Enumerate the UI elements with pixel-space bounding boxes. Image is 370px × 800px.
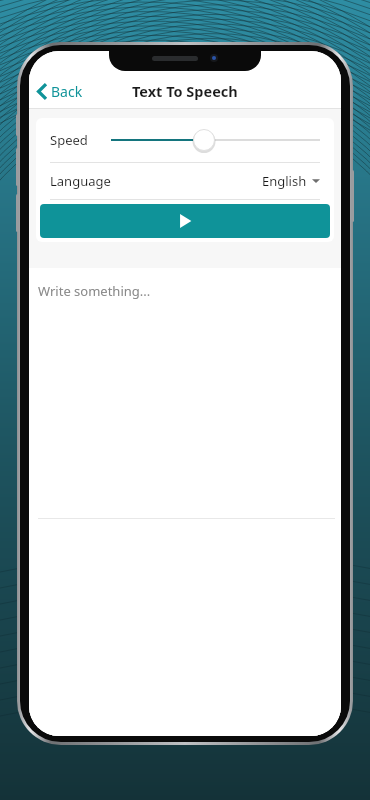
button[interactable]: Play — [40, 204, 330, 238]
staticText: Back — [51, 82, 83, 101]
staticText: Text To Speech — [132, 81, 238, 101]
staticText: Write something... — [38, 282, 151, 300]
staticText: English — [262, 172, 307, 190]
staticText: Speed — [50, 131, 88, 149]
staticText: Language — [50, 172, 111, 190]
button[interactable]: Language — [36, 163, 334, 199]
button[interactable]: Speed — [36, 118, 334, 162]
button[interactable]: Write something... — [29, 268, 341, 736]
button[interactable]: Back — [33, 78, 87, 105]
